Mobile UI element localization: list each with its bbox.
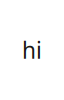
staticText: hi — [22, 35, 42, 65]
